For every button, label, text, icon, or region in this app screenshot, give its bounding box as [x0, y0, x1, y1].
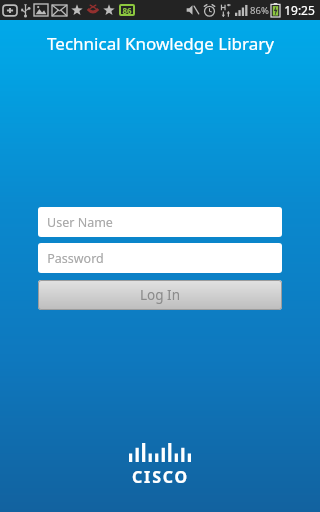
staticText: CISCO [132, 466, 189, 488]
staticText: 19:25 [284, 2, 315, 18]
staticText: Technical Knowledge Library [47, 32, 274, 55]
staticText: User Name [47, 214, 113, 231]
button[interactable]: User Name [38, 207, 282, 237]
staticText: 86 [122, 5, 132, 16]
button[interactable]: Log In [38, 280, 282, 310]
staticText: Log In [140, 286, 180, 304]
staticText: Password [47, 250, 104, 267]
staticText: 86% [250, 4, 269, 17]
button[interactable]: Password [38, 243, 282, 273]
